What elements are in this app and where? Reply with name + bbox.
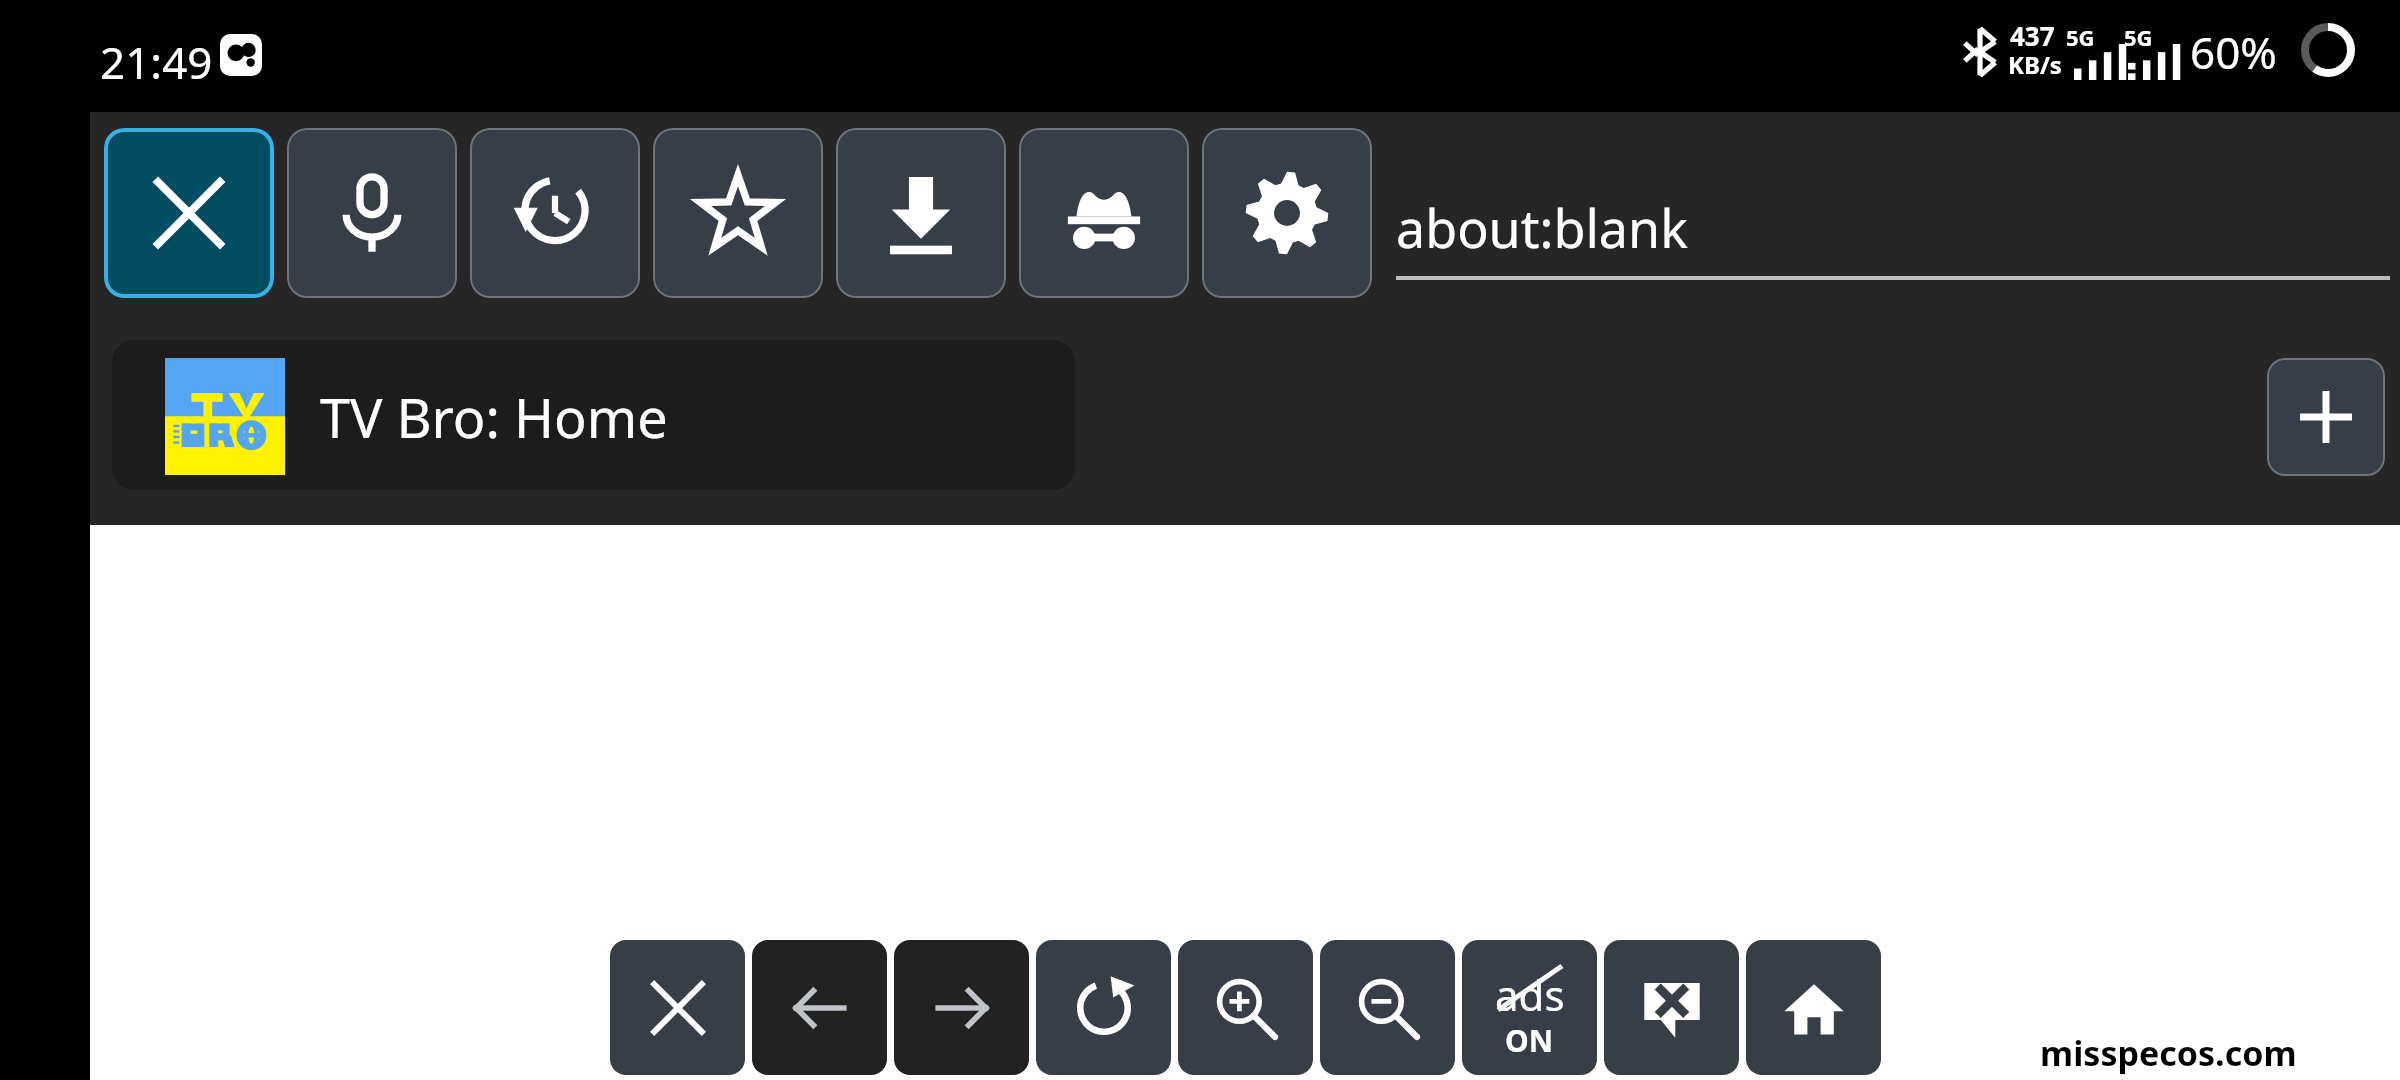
button[interactable]: Settings [1202, 128, 1372, 298]
button[interactable]: Back [752, 940, 887, 1075]
staticText: 437 [2010, 18, 2055, 53]
button[interactable]: Forward [894, 940, 1029, 1075]
button[interactable]: Ad block [1462, 940, 1597, 1075]
button[interactable]: Home [1746, 940, 1881, 1075]
staticText: 5G [2066, 22, 2095, 52]
button[interactable]: Block popups [1604, 940, 1739, 1075]
staticText: about:blank [1396, 192, 1688, 263]
staticText: misspecos.com [2040, 1030, 2297, 1076]
staticText: 60% [2190, 22, 2277, 82]
button[interactable]: Bookmarks [653, 128, 823, 298]
button[interactable]: Zoom out [1320, 940, 1455, 1075]
staticText: 5G [2124, 22, 2153, 52]
button[interactable]: New tab [2267, 358, 2385, 476]
button[interactable]: Voice search [287, 128, 457, 298]
button[interactable]: TV Bro: Home [112, 340, 1075, 490]
button[interactable]: Zoom in [1178, 940, 1313, 1075]
staticText: TV Bro: Home [320, 380, 668, 454]
staticText: 21:49 [100, 32, 213, 92]
button[interactable]: Downloads [836, 128, 1006, 298]
staticText: KB/s [2008, 48, 2062, 81]
button[interactable]: Reload [1036, 940, 1171, 1075]
button[interactable]: Close [104, 128, 274, 298]
button[interactable]: Incognito [1019, 128, 1189, 298]
staticText: ON [1505, 1020, 1554, 1061]
button[interactable]: History [470, 128, 640, 298]
staticText: ads [1495, 966, 1565, 1023]
button[interactable]: Close [610, 940, 745, 1075]
